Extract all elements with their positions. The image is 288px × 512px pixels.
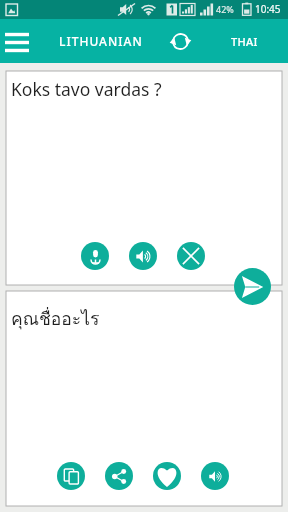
staticText: 42% — [216, 3, 234, 15]
button[interactable]: Clear — [177, 242, 205, 270]
staticText: Koks tavo vardas ? — [11, 77, 162, 101]
button[interactable]: Voice input — [81, 242, 109, 270]
staticText: คุณชื่ออะไร — [11, 305, 100, 333]
staticText: 10:45 — [255, 2, 281, 16]
button[interactable]: Translate — [234, 268, 271, 305]
staticText: THAI — [231, 34, 258, 49]
button[interactable]: Swap languages — [160, 19, 200, 63]
button[interactable]: Listen — [201, 462, 229, 490]
button[interactable]: Share — [105, 462, 133, 490]
button[interactable]: Menu — [0, 19, 34, 63]
button[interactable]: Listen — [129, 242, 157, 270]
staticText: LITHUANIAN — [59, 33, 143, 49]
button[interactable]: Favourite — [153, 462, 181, 490]
button[interactable]: THAI — [200, 19, 288, 63]
button[interactable]: LITHUANIAN — [41, 19, 161, 63]
button[interactable]: Copy — [57, 462, 85, 490]
